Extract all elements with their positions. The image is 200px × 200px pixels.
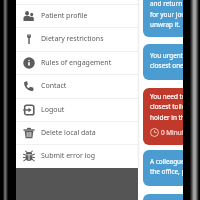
staticText: and return h (150, 0, 188, 8)
staticText: You need to (150, 92, 186, 101)
button[interactable] (143, 150, 188, 186)
button[interactable]: Contact (16, 74, 138, 97)
staticText: Patient profile (41, 11, 88, 21)
button[interactable] (143, 0, 188, 37)
staticText: closest toile (150, 102, 186, 111)
button[interactable] (143, 88, 188, 145)
staticText: Dietary restrictions (41, 34, 104, 44)
staticText: You urgentl (150, 51, 185, 60)
button[interactable]: Delete local data (16, 121, 138, 144)
staticText: for your jou (150, 10, 186, 19)
button[interactable] (143, 44, 188, 80)
button[interactable]: Submit error log (16, 144, 138, 167)
staticText: Logout (41, 105, 65, 115)
button[interactable]: Dietary restrictions (16, 27, 138, 50)
button[interactable]: Rules of engagement (16, 51, 138, 74)
staticText: A colleague (150, 157, 185, 166)
staticText: 0 Minute (161, 128, 188, 137)
staticText: holder in th (150, 113, 185, 122)
staticText: Rules of engagement (41, 58, 112, 68)
staticText: closest one (150, 61, 184, 70)
button[interactable] (143, 194, 188, 200)
staticText: Delete local data (41, 128, 96, 138)
staticText: Contact (41, 81, 67, 91)
button[interactable]: Logout (16, 98, 138, 121)
staticText: unwrap it. (150, 20, 181, 29)
button[interactable]: Patient profile (16, 4, 138, 27)
staticText: Submit error log (41, 151, 96, 161)
staticText: the office, p (150, 167, 186, 176)
